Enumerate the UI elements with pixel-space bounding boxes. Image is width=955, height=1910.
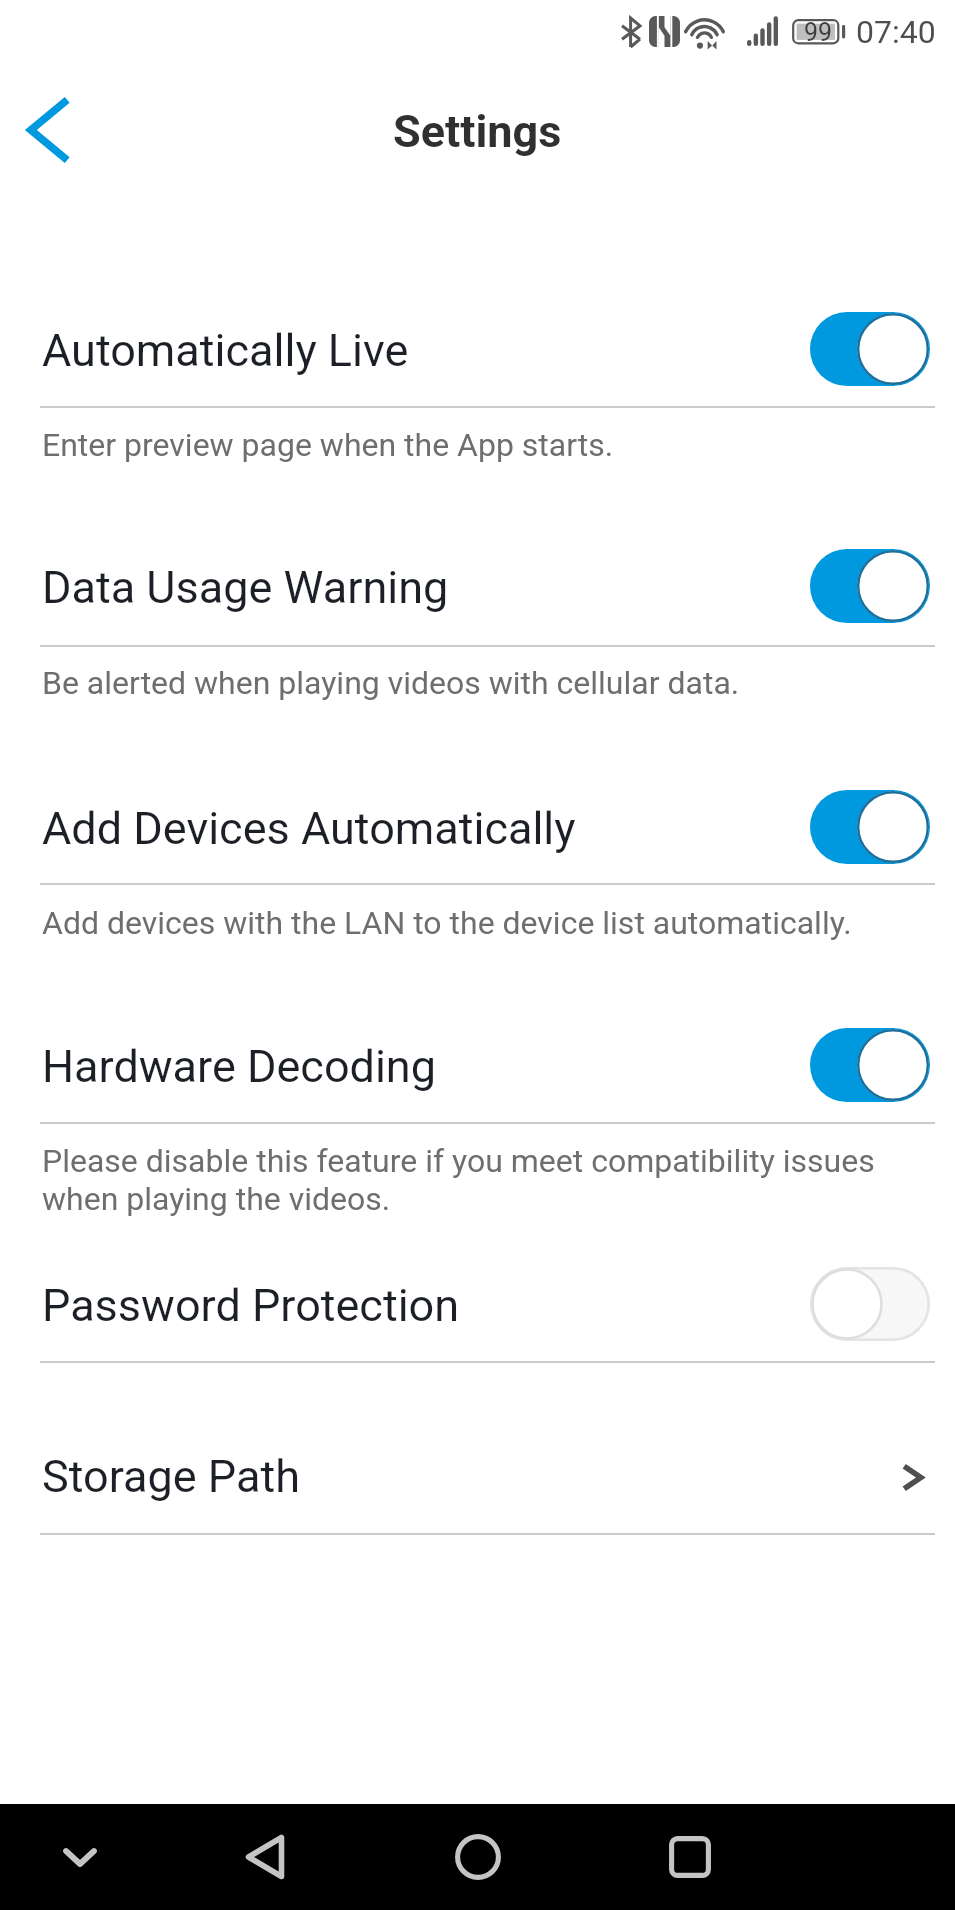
- button[interactable]: Enabled: [810, 1028, 930, 1102]
- button[interactable]: Back: [212, 1804, 318, 1910]
- button[interactable]: Add Devices Automatically: [0, 773, 955, 884]
- staticText: Please disable this feature if you meet …: [42, 1142, 890, 1218]
- staticText: 99: [804, 18, 833, 44]
- button[interactable]: Enabled: [810, 549, 930, 623]
- staticText: Enter preview page when the App starts.: [42, 426, 890, 464]
- button[interactable]: Back: [3, 84, 95, 176]
- button[interactable]: Enabled: [810, 790, 930, 864]
- staticText: Add Devices Automatically: [42, 802, 576, 855]
- staticText: Password Protection: [42, 1279, 460, 1332]
- button[interactable]: Automatically Live: [0, 295, 955, 406]
- button[interactable]: Enabled: [810, 312, 930, 386]
- staticText: Storage Path: [42, 1450, 300, 1503]
- button[interactable]: Open: [875, 1440, 949, 1514]
- button[interactable]: Recent apps: [637, 1804, 743, 1910]
- staticText: Settings: [393, 105, 562, 158]
- button[interactable]: Hardware Decoding: [0, 1011, 955, 1122]
- staticText: Be alerted when playing videos with cell…: [42, 664, 890, 702]
- button[interactable]: Password Protection: [0, 1250, 955, 1361]
- button[interactable]: Disabled: [810, 1267, 930, 1341]
- button[interactable]: Data Usage Warning: [0, 532, 955, 643]
- button[interactable]: Home: [425, 1804, 531, 1910]
- staticText: 07:40: [856, 13, 936, 51]
- staticText: Hardware Decoding: [42, 1040, 436, 1093]
- staticText: Add devices with the LAN to the device l…: [42, 904, 890, 942]
- button[interactable]: Storage Path: [0, 1421, 955, 1532]
- button[interactable]: Hide keyboard: [27, 1804, 133, 1910]
- staticText: Automatically Live: [42, 324, 409, 377]
- staticText: Data Usage Warning: [42, 561, 449, 614]
